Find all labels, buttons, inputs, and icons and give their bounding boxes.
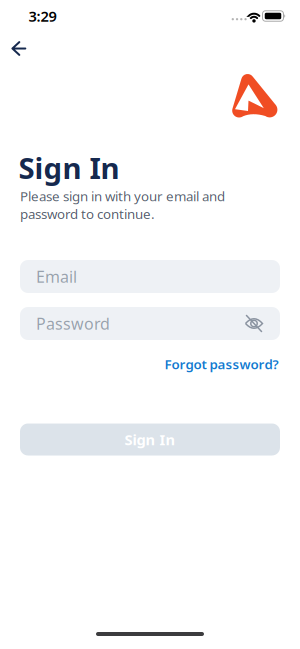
button[interactable]: Email [20,260,280,293]
button[interactable]: Password [20,307,280,340]
staticText: 3:29 [28,6,56,26]
button[interactable]: Forgot password? [164,355,278,373]
staticText: Forgot password? [164,355,278,373]
button[interactable] [237,307,271,340]
button[interactable]: Sign In [20,423,280,455]
staticText: Sign In [18,148,119,187]
button[interactable] [4,33,34,63]
staticText: Email [36,266,77,287]
staticText: Sign In [124,430,175,449]
staticText: Please sign in with your email and passw… [20,187,225,223]
staticText: Password [36,313,110,334]
